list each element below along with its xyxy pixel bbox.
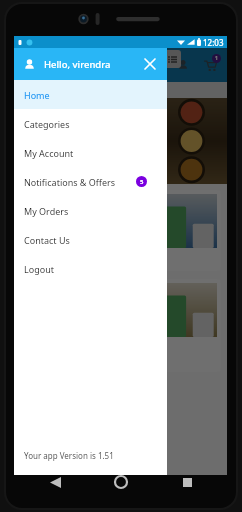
staticText: 12:03	[203, 37, 224, 48]
button[interactable]: Recents	[176, 471, 198, 493]
staticText: 1	[215, 55, 218, 62]
staticText: Notifications & Offers	[24, 176, 116, 188]
staticText: Your app Version is 1.51	[24, 450, 114, 461]
button[interactable]: Close drawer	[139, 53, 161, 75]
staticText: 5	[140, 178, 144, 186]
staticText: Logout	[24, 263, 54, 275]
staticText: My Account	[24, 147, 74, 159]
staticText: Contact Us	[24, 234, 70, 246]
button[interactable]: My Orders	[14, 196, 167, 225]
button[interactable]: Search	[20, 50, 181, 68]
button[interactable]: Home	[14, 80, 167, 109]
button[interactable]: Account	[173, 55, 193, 75]
staticText: Search	[24, 54, 47, 64]
button[interactable]: My Account	[14, 138, 167, 167]
staticText: Deliver to 9BY E7 0SG	[20, 85, 99, 95]
button[interactable]: Categories	[14, 109, 167, 138]
staticText: Home	[24, 89, 50, 101]
button[interactable]: Tobacco E-Cigarette	[20, 279, 221, 372]
button[interactable]: Cart	[199, 54, 221, 76]
button[interactable]: Notifications & Offers	[14, 167, 167, 196]
button[interactable]: Contact Us	[14, 225, 167, 254]
button[interactable]: Back	[44, 471, 66, 493]
staticText: Categories	[24, 118, 70, 130]
button[interactable]: Home	[110, 471, 132, 493]
button[interactable]: Logout	[14, 254, 167, 283]
staticText: Hello, virendra	[44, 58, 111, 71]
button[interactable]: Home Care	[20, 190, 221, 271]
staticText: My Orders	[24, 205, 69, 217]
